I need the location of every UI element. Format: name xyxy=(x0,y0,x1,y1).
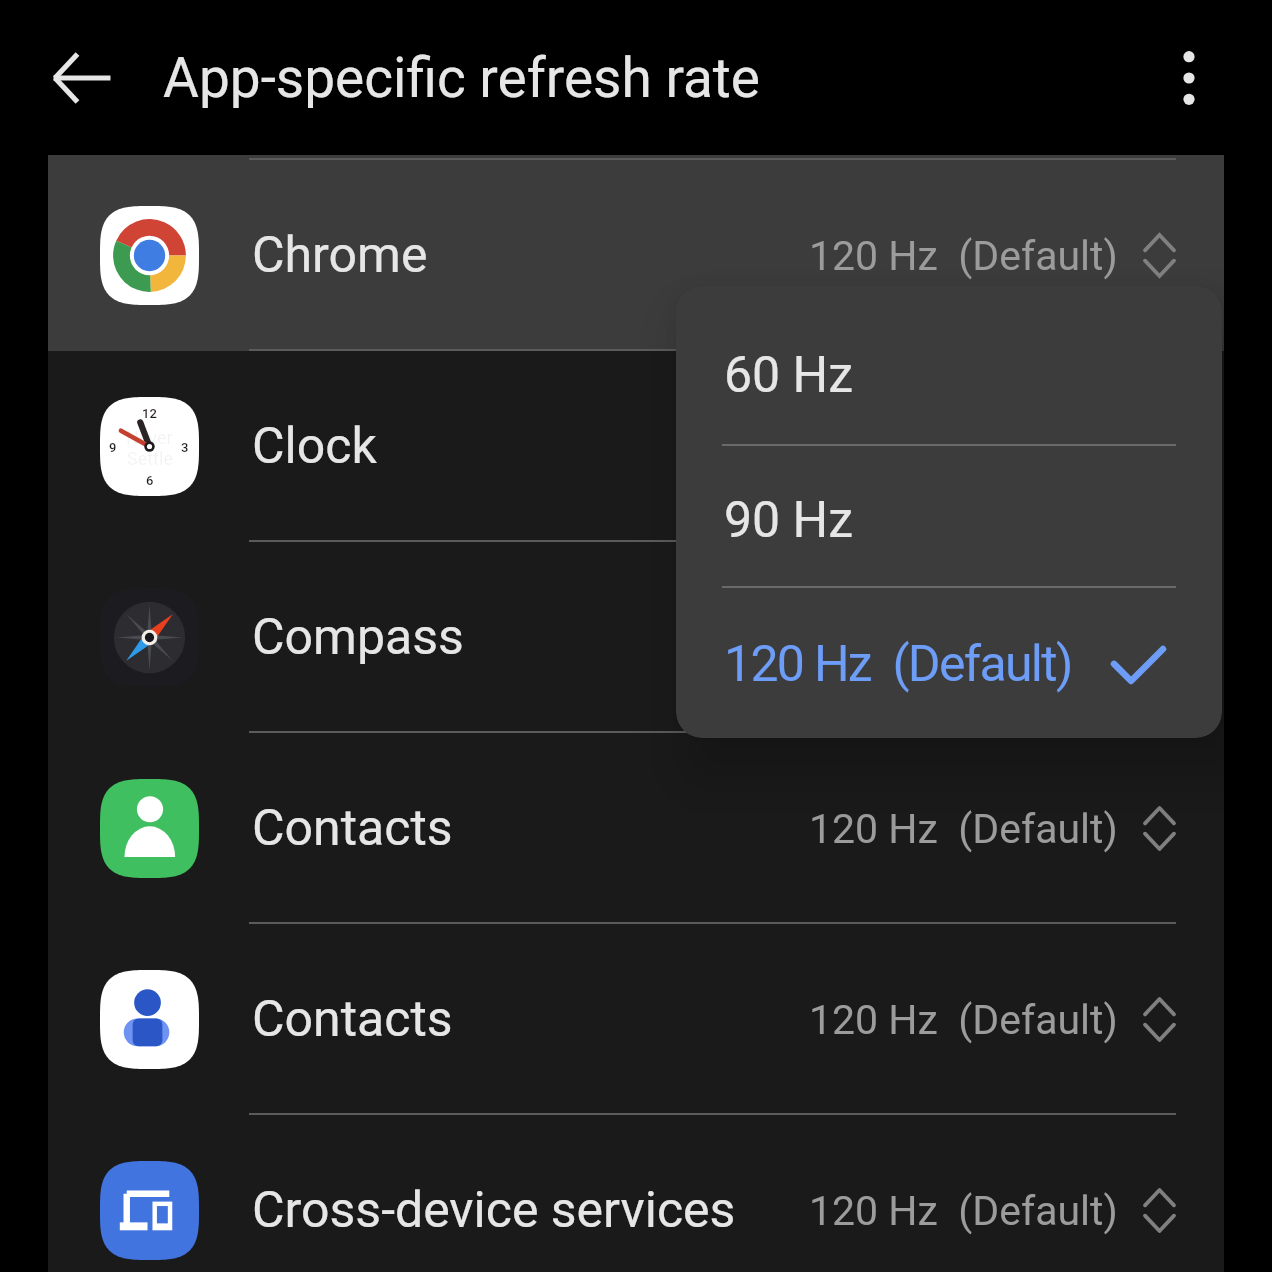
button[interactable]: Contacts xyxy=(48,733,1224,924)
button[interactable]: 12 xyxy=(48,351,1224,542)
button[interactable]: More options xyxy=(1134,23,1244,133)
staticText: 120 Hz (Default) xyxy=(809,614,1118,662)
staticText: 120 Hz (Default) xyxy=(724,635,1072,694)
staticText: Clock xyxy=(252,417,377,476)
staticText: 120 Hz (Default) xyxy=(809,232,1118,280)
button[interactable]: Back xyxy=(26,22,138,134)
staticText: 12 xyxy=(142,406,157,421)
button[interactable]: Chrome xyxy=(48,160,1224,351)
staticText: Cross-device services xyxy=(252,1181,736,1240)
staticText: Chrome xyxy=(252,226,428,285)
staticText: 120 Hz (Default) xyxy=(809,423,1118,471)
staticText: Contacts xyxy=(252,799,453,858)
staticText: 60 Hz xyxy=(724,346,854,405)
staticText: 9 xyxy=(109,440,117,455)
staticText: 120 Hz (Default) xyxy=(809,1187,1118,1235)
staticText: Contacts xyxy=(252,990,453,1049)
staticText: App-specific refresh rate xyxy=(163,46,761,110)
staticText: 90 Hz xyxy=(724,491,854,550)
staticText: 3 xyxy=(181,440,189,455)
button[interactable]: Compass xyxy=(48,542,1224,733)
button[interactable]: Contacts xyxy=(48,924,1224,1115)
staticText: 6 xyxy=(146,473,154,488)
staticText: Compass xyxy=(252,608,464,667)
button[interactable]: 60 Hz xyxy=(676,304,1222,447)
button[interactable]: 90 Hz xyxy=(676,449,1222,591)
button[interactable]: 120 Hz (Default) xyxy=(676,592,1222,736)
button[interactable]: Cross-device services xyxy=(48,1115,1224,1272)
staticText: Never xyxy=(126,427,173,448)
staticText: 120 Hz (Default) xyxy=(809,996,1118,1044)
staticText: Settle xyxy=(127,448,173,469)
staticText: 120 Hz (Default) xyxy=(809,805,1118,853)
